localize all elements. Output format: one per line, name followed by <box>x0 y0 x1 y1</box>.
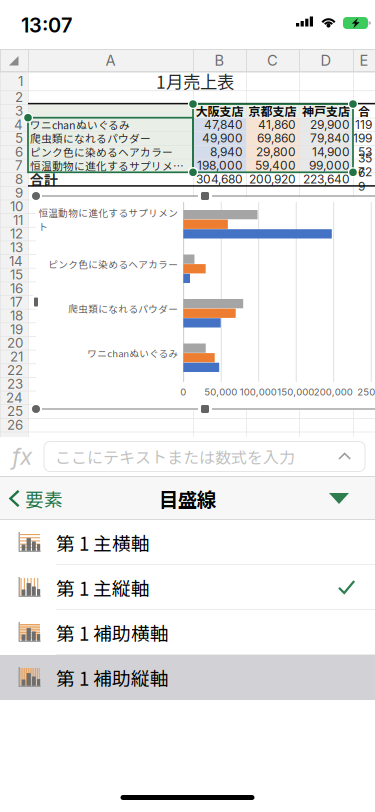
staticText: 神戸支店 <box>302 102 350 120</box>
staticText: 第 1 主縦軸 <box>56 574 150 601</box>
staticText: 0 <box>180 386 186 398</box>
staticText: 要素 <box>25 485 63 512</box>
staticText: 爬虫類になれるパウダー <box>30 130 151 146</box>
staticText: 6 <box>15 144 23 160</box>
staticText: 223,640 <box>303 172 350 186</box>
staticText: 16 <box>10 280 23 296</box>
staticText: 第 1 補助横軸 <box>56 619 169 646</box>
staticText: 目盛線 <box>159 484 216 512</box>
staticText: 18 <box>10 308 23 324</box>
staticText: 49,900 <box>202 131 243 145</box>
staticText: 19 <box>10 321 23 337</box>
staticText: 大阪支店 <box>195 102 243 120</box>
staticText: 爬虫類になれるパウダー <box>68 301 178 315</box>
staticText: D <box>320 52 331 69</box>
button[interactable]: Insert function <box>0 437 44 476</box>
staticText: 50,000 <box>204 386 237 398</box>
staticText: 24 <box>6 389 23 406</box>
staticText: 29,800 <box>256 145 296 159</box>
staticText: ワニchanぬいぐるみ <box>87 346 178 360</box>
staticText: 99,000 <box>309 158 350 173</box>
staticText: 47,840 <box>204 117 243 132</box>
staticText: 79,840 <box>310 131 350 145</box>
staticText: 恒温動物に進化するサプリメント <box>30 158 193 173</box>
button[interactable]: 第 1 補助縦軸 <box>0 655 375 700</box>
staticText: 13 <box>10 239 23 255</box>
staticText: 200,000 <box>314 386 353 398</box>
staticText: 100,000 <box>240 386 277 398</box>
staticText: 1 <box>18 73 23 89</box>
staticText: 京都支店 <box>248 102 296 120</box>
staticText: 13:07 <box>21 13 72 37</box>
staticText: 1月売上表 <box>156 69 234 94</box>
staticText: 20 <box>7 335 23 351</box>
staticText: 53 <box>358 145 372 159</box>
staticText: 5 <box>15 130 23 146</box>
staticText: 17 <box>10 294 23 310</box>
staticText: 14,900 <box>312 145 350 159</box>
staticText: 25 <box>7 403 23 419</box>
staticText: 198,000 <box>197 158 243 173</box>
staticText: 7 <box>15 157 23 173</box>
staticText: 23 <box>7 376 23 392</box>
staticText: 合 <box>358 102 370 120</box>
staticText: 200,920 <box>249 172 296 186</box>
staticText: 304,680 <box>196 172 243 186</box>
button[interactable]: ここにテキストまたは数式を入力 <box>44 441 365 471</box>
staticText: 356 <box>358 151 372 180</box>
button[interactable]: 要素 <box>0 477 96 520</box>
staticText: 11 <box>13 212 23 228</box>
staticText: 729 <box>358 165 372 194</box>
staticText: 4 <box>14 116 23 133</box>
staticText: ここにテキストまたは数式を入力 <box>55 445 295 468</box>
staticText: 59,400 <box>255 158 296 173</box>
button[interactable]: Apply <box>323 477 375 520</box>
staticText: E <box>359 52 368 69</box>
staticText: A <box>105 52 115 69</box>
staticText: C <box>267 52 278 69</box>
staticText: ワニchanぬいぐるみ <box>30 117 130 132</box>
staticText: 15 <box>10 267 23 283</box>
staticText: 29,900 <box>310 117 350 132</box>
staticText: 26 <box>7 417 23 433</box>
button[interactable]: 第 1 補助横軸 <box>0 610 375 655</box>
staticText: ピンク色に染めるヘアカラー <box>48 257 178 271</box>
staticText: 9 <box>15 185 23 201</box>
staticText: 第 1 主横軸 <box>56 529 150 556</box>
staticText: 3 <box>15 103 23 119</box>
staticText: 69,860 <box>257 131 296 145</box>
staticText: 8,940 <box>210 145 243 159</box>
staticText: fx <box>12 443 32 470</box>
staticText: 250,0 <box>357 386 375 398</box>
staticText: ピンク色に染めるヘアカラー <box>30 144 173 159</box>
staticText: 22 <box>7 362 23 378</box>
staticText: 10 <box>10 198 23 214</box>
button[interactable]: 第 1 主横軸 <box>0 520 375 565</box>
staticText: 恒温動物に進化するサプリメント <box>38 206 178 233</box>
staticText: 合計 <box>30 169 58 189</box>
staticText: 119 <box>355 117 372 132</box>
staticText: B <box>214 52 224 69</box>
staticText: 8 <box>15 171 23 187</box>
button[interactable]: 第 1 主縦軸 <box>0 565 375 610</box>
staticText: 12 <box>10 226 23 242</box>
staticText: 199 <box>353 131 372 145</box>
staticText: 21 <box>10 348 23 365</box>
staticText: 2 <box>15 89 23 105</box>
staticText: 41,860 <box>258 117 296 132</box>
staticText: 14 <box>9 253 23 269</box>
staticText: 第 1 補助縦軸 <box>56 664 169 691</box>
staticText: 150,000 <box>277 386 314 398</box>
